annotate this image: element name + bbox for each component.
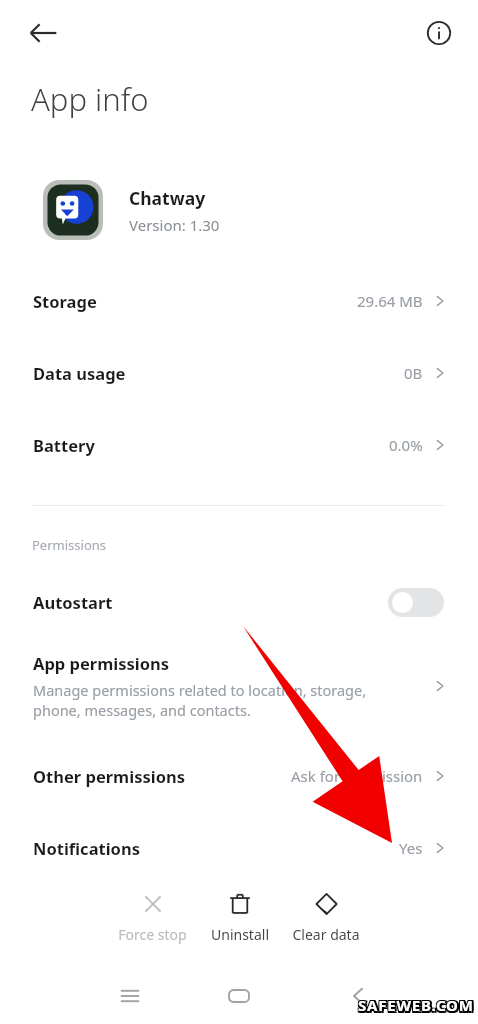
staticText: 29.64 MB bbox=[357, 291, 423, 311]
button[interactable]: App details bbox=[422, 16, 456, 50]
button[interactable]: Clear data bbox=[286, 888, 366, 946]
staticText: Version: 1.30 bbox=[129, 215, 220, 235]
staticText: Manage permissions related to location, … bbox=[33, 680, 367, 720]
staticText: App permissions bbox=[33, 652, 170, 674]
staticText: SAFEWEB.COM bbox=[357, 995, 473, 1015]
staticText: Storage bbox=[33, 290, 97, 312]
button[interactable]: Storage bbox=[0, 265, 478, 337]
button[interactable]: Notifications bbox=[0, 812, 478, 884]
staticText: SAFEWEB.COM bbox=[360, 997, 476, 1017]
staticText: Yes bbox=[399, 838, 423, 858]
staticText: Clear data bbox=[292, 925, 360, 944]
staticText: Ask for permission bbox=[291, 766, 423, 786]
button[interactable]: Autostart bbox=[0, 576, 478, 628]
staticText: SAFEWEB.COM bbox=[357, 997, 473, 1017]
staticText: SAFEWEB.COM bbox=[360, 995, 476, 1015]
staticText: SAFEWEB.COM bbox=[358, 994, 474, 1014]
button[interactable]: Back bbox=[338, 976, 378, 1016]
staticText: Uninstall bbox=[211, 925, 269, 944]
staticText: Force stop bbox=[118, 925, 187, 944]
staticText: Autostart bbox=[33, 591, 113, 613]
staticText: Data usage bbox=[33, 362, 126, 384]
staticText: SAFEWEB.COM bbox=[360, 994, 476, 1014]
staticText: SAFEWEB.COM bbox=[358, 997, 474, 1017]
staticText: Chatway bbox=[129, 186, 206, 210]
staticText: Notifications bbox=[33, 837, 140, 859]
button[interactable]: Back bbox=[22, 11, 66, 55]
button[interactable]: Other permissions bbox=[0, 740, 478, 812]
button[interactable]: Battery bbox=[0, 409, 478, 481]
button[interactable]: App permissions bbox=[0, 652, 478, 720]
staticText: Battery bbox=[33, 434, 95, 456]
staticText: SAFEWEB.COM bbox=[358, 995, 474, 1015]
button[interactable]: Home bbox=[219, 976, 259, 1016]
staticText: 0B bbox=[404, 363, 423, 383]
button[interactable]: Data usage bbox=[0, 337, 478, 409]
staticText: SAFEWEB.COM bbox=[357, 994, 473, 1014]
staticText: Permissions bbox=[32, 536, 107, 554]
staticText: 0.0% bbox=[389, 435, 423, 455]
button[interactable]: Uninstall bbox=[205, 888, 275, 946]
staticText: Other permissions bbox=[33, 765, 185, 787]
button[interactable]: Recents bbox=[110, 976, 150, 1016]
staticText: App info bbox=[31, 78, 149, 120]
button[interactable]: Force stop bbox=[112, 888, 193, 946]
